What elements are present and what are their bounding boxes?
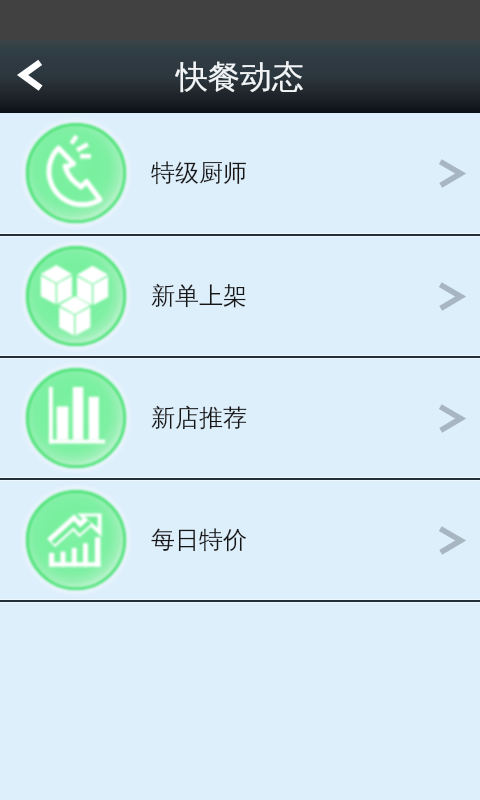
staticText: 每日特价 (151, 525, 247, 555)
staticText: 新单上架 (151, 281, 247, 311)
staticText: 新店推荐 (151, 403, 247, 433)
staticText: 特级厨师 (151, 158, 247, 188)
button[interactable]: 特级厨师 (0, 113, 480, 233)
button[interactable]: Back (0, 40, 66, 113)
button[interactable]: 每日特价 (0, 481, 480, 599)
button[interactable]: 新店推荐 (0, 359, 480, 477)
staticText: 快餐动态 (176, 57, 304, 97)
button[interactable]: 新单上架 (0, 237, 480, 355)
